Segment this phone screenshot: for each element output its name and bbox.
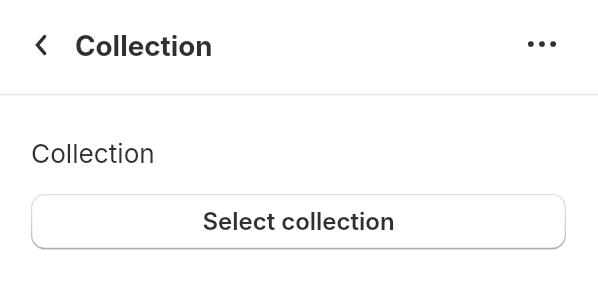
- button[interactable]: Select collection: [31, 194, 566, 249]
- staticText: Collection: [31, 138, 155, 170]
- button[interactable]: Back: [21, 25, 61, 65]
- staticText: Collection: [75, 29, 213, 63]
- staticText: Select collection: [202, 207, 395, 236]
- button[interactable]: More options: [518, 20, 566, 68]
